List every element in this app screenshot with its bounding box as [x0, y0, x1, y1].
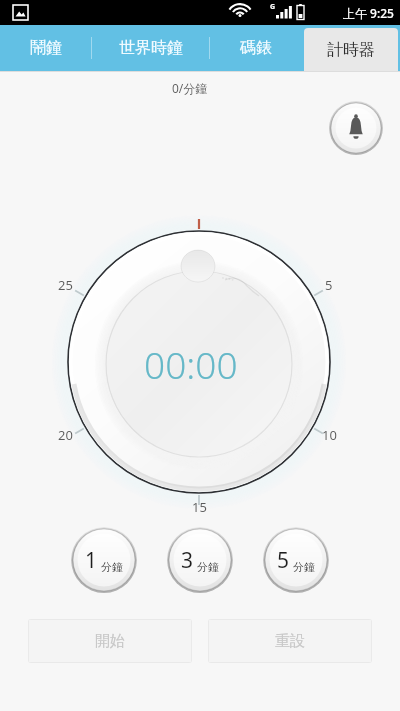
- staticText: 0/分鐘: [172, 80, 208, 96]
- staticText: 00:00: [144, 339, 238, 389]
- staticText: 上午 9:25: [343, 5, 394, 21]
- staticText: 重設: [275, 632, 305, 651]
- staticText: G: [270, 2, 276, 12]
- button[interactable]: 重設: [208, 619, 372, 663]
- staticText: 5: [325, 276, 333, 294]
- button[interactable]: 鬧鐘: [0, 25, 92, 71]
- button[interactable]: 開始: [28, 619, 192, 663]
- staticText: 分鐘: [101, 560, 123, 574]
- staticText: 10: [322, 426, 337, 444]
- button[interactable]: 計時器: [304, 28, 398, 71]
- button[interactable]: 5: [263, 527, 329, 593]
- staticText: 鬧鐘: [30, 38, 62, 58]
- staticText: 碼錶: [240, 38, 272, 58]
- staticText: 世界時鐘: [119, 38, 183, 58]
- staticText: 25: [58, 276, 73, 294]
- staticText: 計時器: [327, 40, 375, 60]
- button[interactable]: 1: [71, 527, 137, 593]
- staticText: 20: [58, 426, 73, 444]
- button[interactable]: 世界時鐘: [92, 25, 210, 71]
- staticText: 開始: [95, 632, 125, 651]
- staticText: 15: [192, 498, 207, 516]
- button[interactable]: 3: [167, 527, 233, 593]
- staticText: 分鐘: [197, 560, 219, 574]
- button[interactable]: Timer dial: [0, 73, 400, 465]
- button[interactable]: Alarm sound: [329, 101, 383, 155]
- staticText: 1: [85, 546, 98, 575]
- staticText: 3: [181, 546, 194, 575]
- button[interactable]: 碼錶: [210, 25, 302, 71]
- staticText: 分鐘: [293, 560, 315, 574]
- staticText: 5: [277, 546, 290, 575]
